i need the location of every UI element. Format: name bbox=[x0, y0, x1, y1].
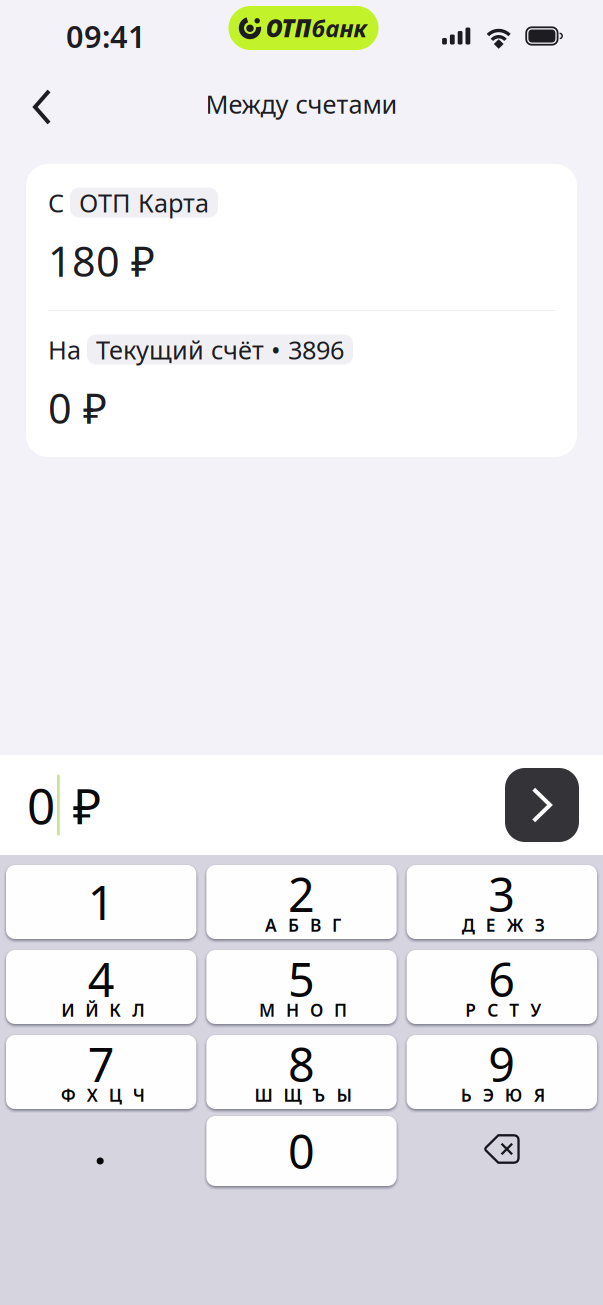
staticText: 09:41 bbox=[66, 16, 146, 56]
button[interactable]: 8 bbox=[206, 1035, 397, 1109]
button[interactable]: 0 bbox=[206, 1116, 397, 1186]
staticText: 0 bbox=[27, 772, 55, 838]
staticText: 7 bbox=[88, 1033, 115, 1095]
staticText: 0 bbox=[288, 1120, 315, 1182]
button[interactable]: 2 bbox=[206, 865, 397, 939]
staticText: Ш Щ Ъ Ы bbox=[254, 1083, 351, 1106]
button[interactable]: 5 bbox=[206, 950, 397, 1024]
button[interactable]: Продолжить bbox=[505, 768, 579, 842]
button[interactable]: С bbox=[26, 164, 577, 310]
staticText: 8 bbox=[288, 1033, 315, 1095]
button[interactable]: Точка bbox=[6, 1116, 196, 1186]
button[interactable]: 6 bbox=[407, 950, 597, 1024]
staticText: С bbox=[48, 186, 64, 219]
staticText: 5 bbox=[288, 948, 315, 1010]
staticText: банк bbox=[311, 12, 366, 44]
staticText: 0 ₽ bbox=[48, 380, 107, 435]
staticText: 2 bbox=[288, 863, 315, 925]
staticText: А Б В Г bbox=[265, 913, 341, 936]
staticText: Ь Э Ю Я bbox=[461, 1083, 546, 1106]
staticText: М Н О П bbox=[259, 998, 347, 1021]
staticText: 3 bbox=[488, 863, 515, 925]
button[interactable]: 3 bbox=[407, 865, 597, 939]
staticText: ОТП bbox=[265, 12, 310, 44]
button[interactable]: Назад bbox=[0, 72, 78, 136]
staticText: 1 bbox=[88, 871, 115, 933]
staticText: Между счетами bbox=[205, 87, 397, 121]
staticText: ₽ bbox=[73, 772, 102, 838]
button[interactable]: 9 bbox=[407, 1035, 597, 1109]
button[interactable]: Удалить bbox=[407, 1116, 597, 1186]
staticText: 180 ₽ bbox=[48, 233, 155, 288]
button[interactable]: 1 bbox=[6, 865, 196, 939]
staticText: ОТП Карта bbox=[79, 186, 209, 219]
staticText: И Й К Л bbox=[61, 998, 144, 1021]
staticText: 9 bbox=[488, 1033, 515, 1095]
staticText: Д Е Ж З bbox=[462, 913, 545, 936]
staticText: Ф Х Ц Ч bbox=[61, 1083, 145, 1106]
staticText: 4 bbox=[88, 948, 115, 1010]
button[interactable]: 7 bbox=[6, 1035, 196, 1109]
staticText: 6 bbox=[488, 948, 515, 1010]
staticText: Р С Т У bbox=[465, 998, 541, 1021]
button[interactable]: 4 bbox=[6, 950, 196, 1024]
button[interactable]: На bbox=[26, 311, 577, 457]
staticText: Текущий счёт • 3896 bbox=[96, 333, 344, 366]
staticText: На bbox=[48, 333, 81, 366]
